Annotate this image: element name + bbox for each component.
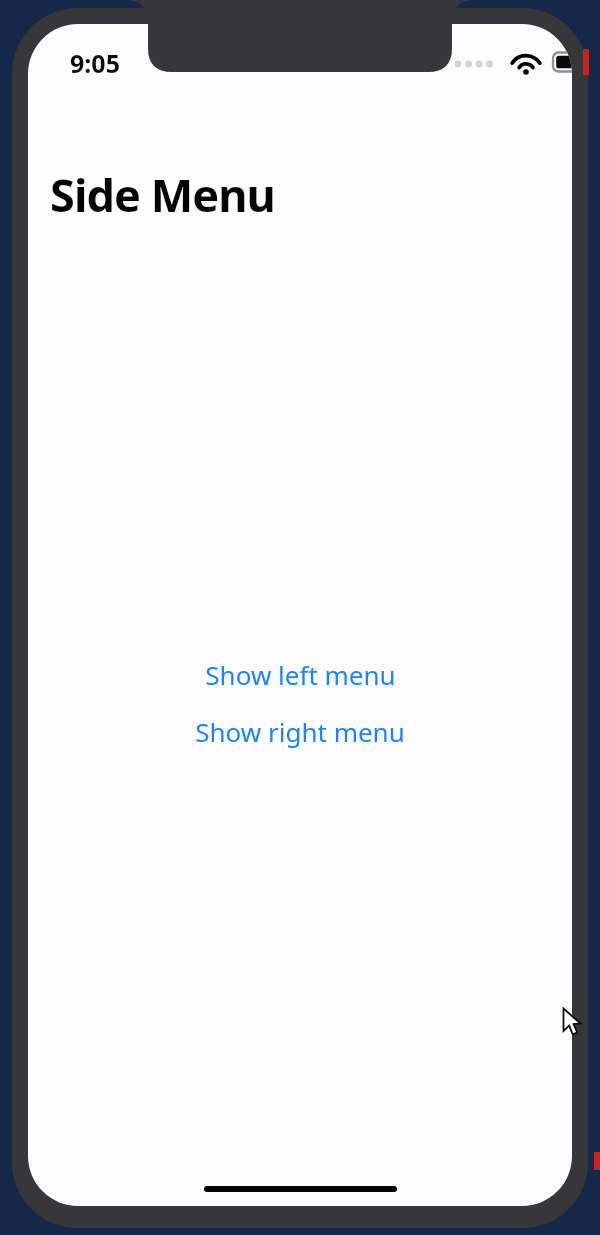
other: Signal, Wi-Fi and battery status: [452, 46, 570, 78]
staticText: Side Menu: [50, 164, 275, 225]
button[interactable]: Show left menu: [187, 650, 414, 699]
staticText: 9:05: [70, 46, 120, 80]
staticText: Show right menu: [195, 714, 405, 749]
staticText: Show left menu: [205, 657, 396, 692]
button[interactable]: Show right menu: [177, 707, 423, 756]
